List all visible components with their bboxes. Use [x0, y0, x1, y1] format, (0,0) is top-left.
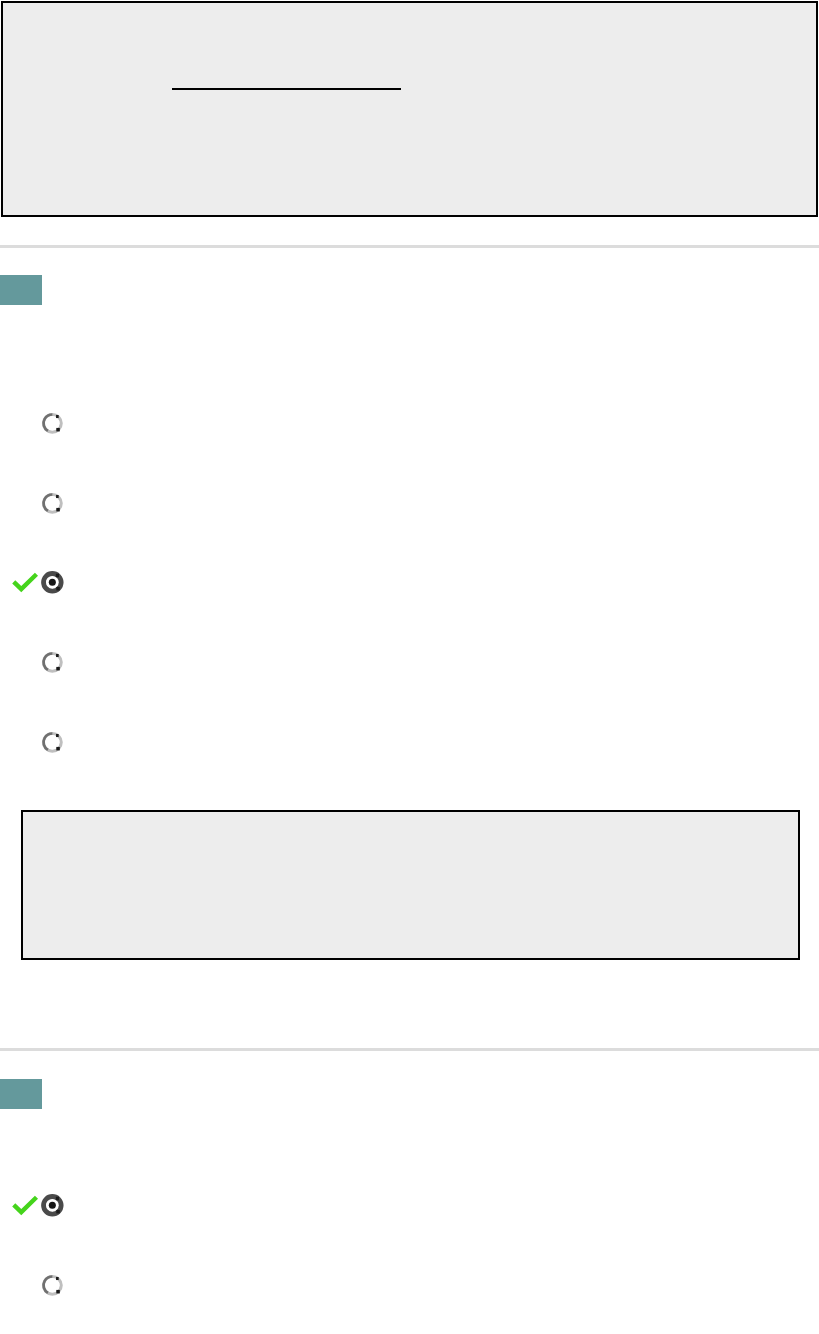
button[interactable] [0, 1272, 819, 1300]
button[interactable] [0, 490, 819, 518]
button[interactable] [0, 649, 819, 677]
button[interactable] [0, 569, 819, 597]
button[interactable] [0, 1192, 819, 1220]
button[interactable] [0, 729, 819, 757]
button[interactable] [0, 410, 819, 438]
